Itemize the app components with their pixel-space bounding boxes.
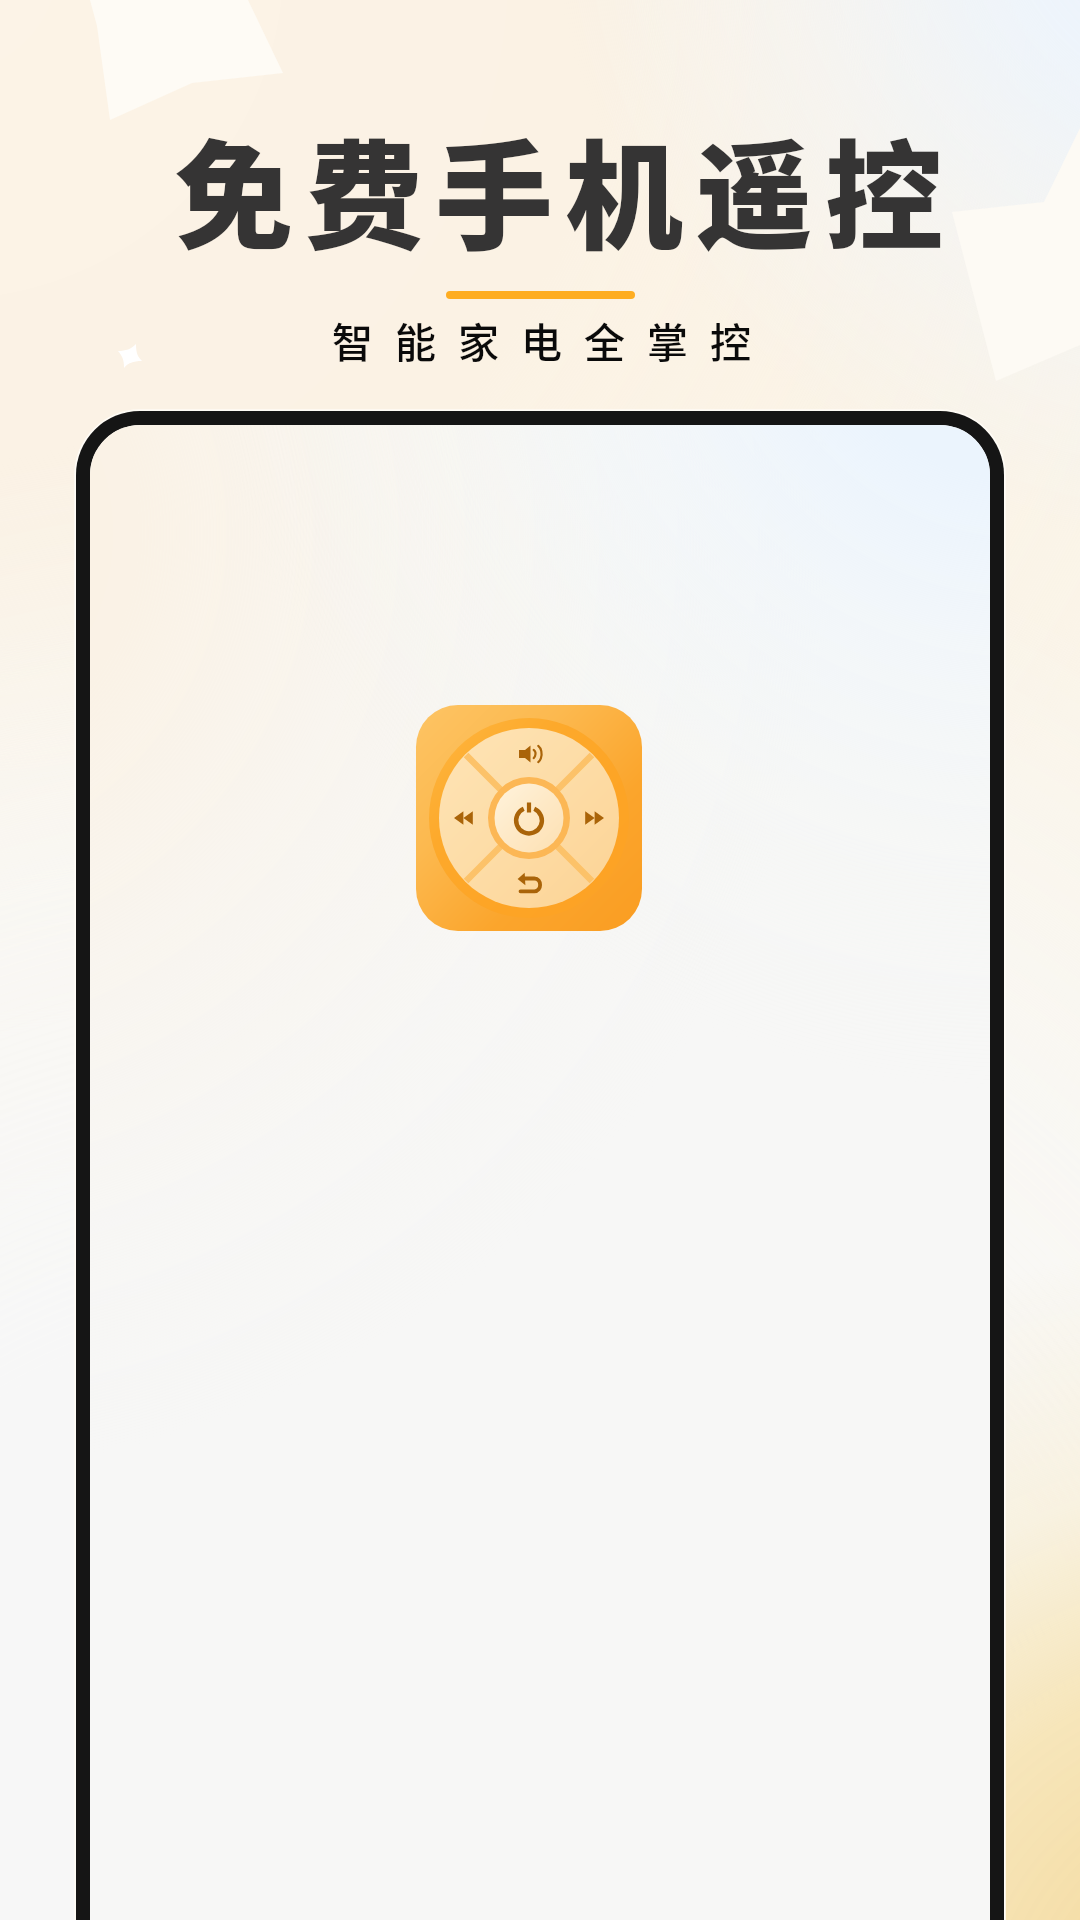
button[interactable]: Open remote control — [416, 705, 642, 931]
staticText: 智能家电全掌控 — [332, 310, 773, 369]
staticText: 免费手机遥控 — [175, 103, 956, 274]
